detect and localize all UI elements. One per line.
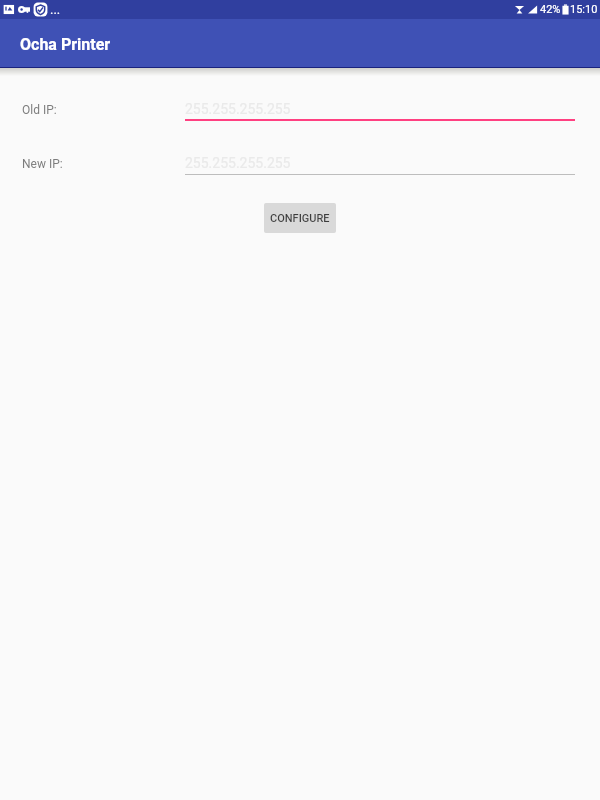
staticText: Old IP: xyxy=(22,103,57,117)
button[interactable]: Old IP address field xyxy=(185,97,575,121)
staticText: CONFIGURE xyxy=(270,212,330,225)
staticText: Ocha Printer xyxy=(20,35,111,54)
staticText: 255.255.255.255 xyxy=(185,101,291,117)
staticText: 15:10 xyxy=(570,3,598,16)
staticText: 255.255.255.255 xyxy=(185,155,291,171)
staticText: 42% xyxy=(540,3,561,16)
button[interactable]: New IP address field xyxy=(185,151,575,175)
staticText: ... xyxy=(50,2,61,17)
staticText: New IP: xyxy=(22,157,63,171)
button[interactable]: CONFIGURE xyxy=(264,203,336,233)
